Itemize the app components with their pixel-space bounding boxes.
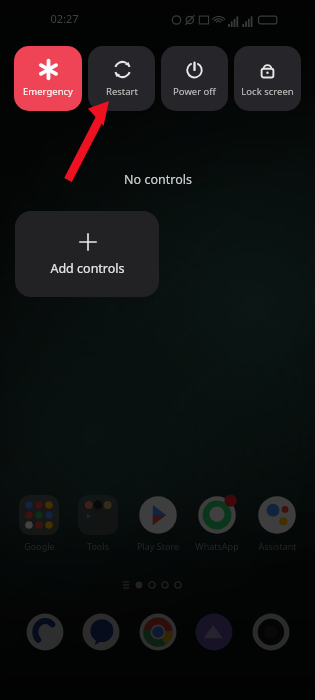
- button[interactable]: WhatsApp: [188, 495, 246, 552]
- button[interactable]: Google: [10, 495, 68, 552]
- button[interactable]: Phone: [23, 610, 67, 654]
- staticText: WhatsApp: [195, 540, 239, 552]
- button[interactable]: Restart: [88, 46, 155, 111]
- button[interactable]: Emergency: [14, 46, 82, 111]
- staticText: Power off: [173, 85, 216, 98]
- button[interactable]: Chrome: [136, 610, 180, 654]
- button[interactable]: Add controls: [15, 211, 159, 297]
- button[interactable]: Power off: [161, 46, 228, 111]
- staticText: Emergency: [23, 85, 73, 98]
- staticText: Add controls: [50, 260, 125, 277]
- staticText: Assistant: [258, 540, 297, 552]
- staticText: 02:27: [50, 11, 79, 26]
- staticText: Restart: [106, 85, 138, 98]
- staticText: Tools: [87, 540, 109, 552]
- button[interactable]: Assistant: [248, 495, 306, 552]
- staticText: Lock screen: [241, 85, 294, 98]
- staticText: Google: [24, 540, 55, 552]
- button[interactable]: Messages: [79, 610, 123, 654]
- button[interactable]: Play Store: [129, 495, 187, 552]
- button[interactable]: Lock screen: [234, 46, 301, 111]
- button[interactable]: Camera: [249, 610, 293, 654]
- button[interactable]: Gallery: [192, 610, 236, 654]
- staticText: No controls: [124, 171, 192, 188]
- button[interactable]: Tools: [69, 495, 127, 552]
- staticText: Play Store: [137, 540, 179, 552]
